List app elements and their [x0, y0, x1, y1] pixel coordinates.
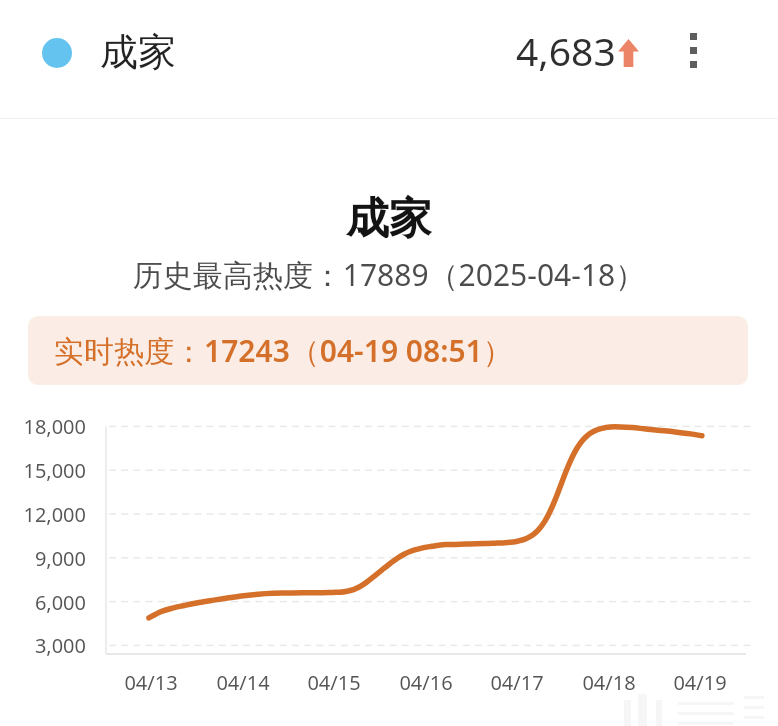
staticText: 实时热度：17243（04-19 08:51） — [54, 330, 513, 371]
staticText: 3,000 — [0, 632, 86, 659]
staticText: 12,000 — [0, 501, 86, 528]
staticText: 04/19 — [650, 669, 750, 696]
staticText: 18,000 — [0, 413, 86, 440]
staticText: 历史最高热度：17889（2025-04-18） — [0, 254, 778, 295]
staticText: 04/13 — [101, 669, 201, 696]
staticText: 成家 — [100, 28, 176, 76]
button[interactable]: More options — [671, 28, 715, 72]
staticText: 04/18 — [559, 669, 659, 696]
staticText: 04/17 — [467, 669, 567, 696]
staticText: 9,000 — [0, 545, 86, 572]
staticText: 04/14 — [193, 669, 293, 696]
staticText: 04/15 — [284, 669, 384, 696]
staticText: 4,683 — [516, 24, 616, 77]
staticText: 15,000 — [0, 457, 86, 484]
staticText: 6,000 — [0, 589, 86, 616]
staticText: 成家 — [0, 192, 778, 246]
button[interactable]: 实时热度：17243（04-19 08:51） — [28, 316, 748, 385]
staticText: 04/16 — [376, 669, 476, 696]
